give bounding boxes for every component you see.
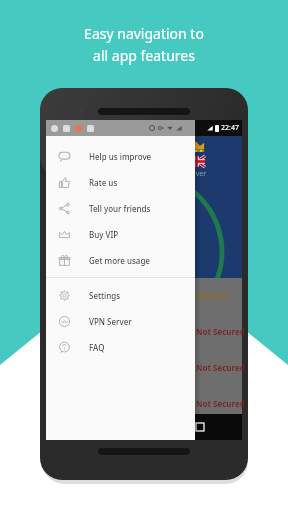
button[interactable]: Rate us	[46, 169, 195, 195]
button[interactable]: Buy VIP	[46, 221, 195, 247]
button[interactable]: Not Secured	[46, 360, 242, 374]
staticText: Not Secured	[196, 398, 245, 409]
button[interactable]: Settings	[46, 282, 195, 308]
staticText: Not Secured	[196, 362, 245, 373]
staticText: 22:47	[221, 123, 239, 133]
button[interactable]: Not Secured	[46, 396, 242, 410]
staticText: Not Secured	[196, 326, 245, 337]
staticText: Tell your friends	[89, 203, 151, 214]
button[interactable]: VPN Server	[46, 308, 195, 334]
staticText: FAQ	[89, 342, 105, 353]
staticText: Buy VIP	[89, 229, 119, 240]
button[interactable]: Not Secured	[46, 324, 242, 338]
button[interactable]: Help us improve	[46, 143, 195, 169]
staticText: Blocked	[196, 290, 228, 301]
button[interactable]: Blocked	[46, 288, 242, 302]
button[interactable]: Get more usage	[46, 247, 195, 273]
staticText: Help us improve	[89, 151, 152, 162]
staticText: Get more usage	[89, 255, 150, 266]
button[interactable]: Tell your friends	[46, 195, 195, 221]
staticText: Server	[185, 169, 207, 179]
staticText: all app features	[93, 46, 195, 65]
staticText: Settings	[89, 290, 121, 301]
staticText: VPN Server	[89, 316, 132, 327]
staticText: Rate us	[89, 177, 118, 188]
button[interactable]: Recent apps	[187, 414, 213, 440]
staticText: Easy navigation to	[84, 24, 204, 43]
button[interactable]: FAQ	[46, 334, 195, 360]
